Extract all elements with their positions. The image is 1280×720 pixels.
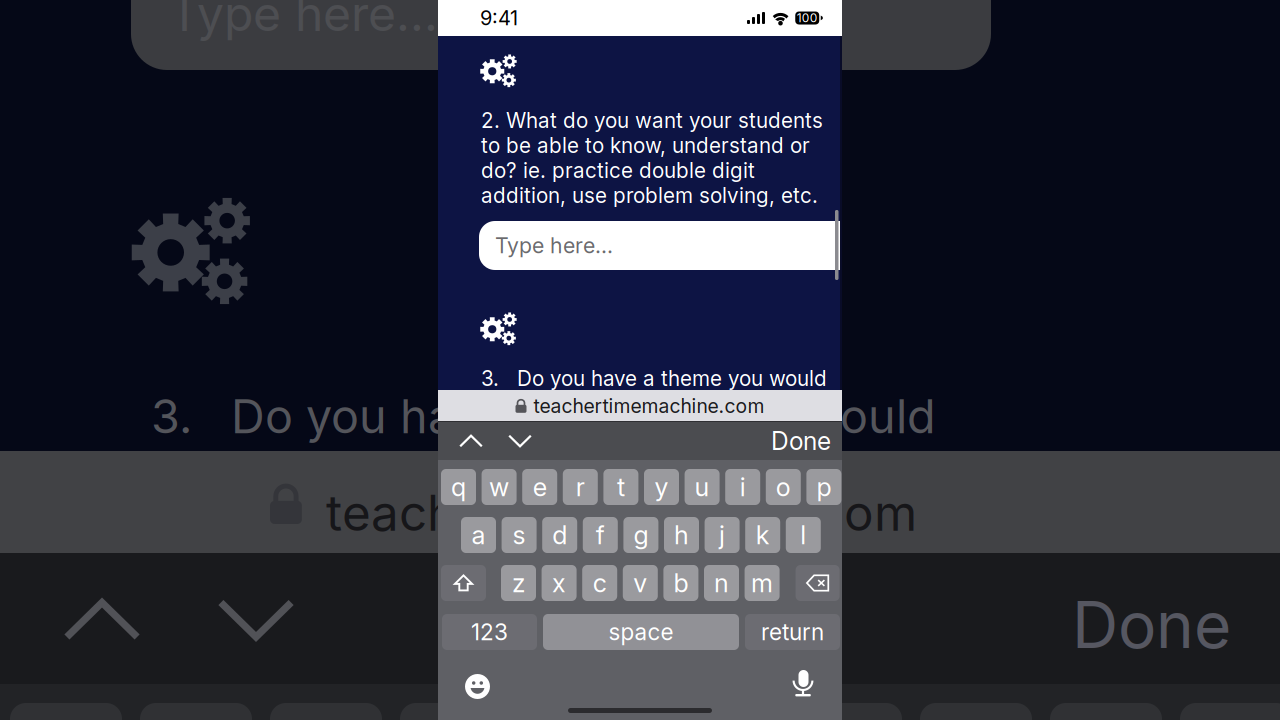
button[interactable]: f (583, 517, 618, 553)
button[interactable]: d (542, 517, 577, 553)
button[interactable]: u (685, 469, 720, 505)
button[interactable]: Delete (796, 565, 840, 601)
button[interactable]: t (603, 469, 638, 505)
staticText: space (608, 618, 673, 646)
button[interactable]: Emoji (463, 672, 492, 701)
button[interactable]: p (806, 469, 841, 505)
button[interactable]: q (441, 469, 476, 505)
button[interactable]: 123 (442, 614, 537, 650)
staticText: c (593, 568, 607, 598)
button[interactable]: return (745, 614, 840, 650)
staticText: teachertimemachine.com (533, 394, 764, 418)
staticText: e (533, 472, 547, 502)
staticText: y (654, 472, 668, 502)
button[interactable]: y (644, 469, 679, 505)
staticText: x (552, 568, 566, 598)
button[interactable]: i (725, 469, 760, 505)
staticText: m (751, 568, 773, 598)
button[interactable]: j (705, 517, 740, 553)
button[interactable]: Done (768, 422, 834, 460)
staticText: Done (771, 426, 831, 456)
staticText: teachertimemachine.com (326, 483, 917, 543)
staticText: u (695, 472, 710, 502)
staticText: 2. What do you want your students to be … (481, 108, 823, 208)
staticText: q (451, 472, 466, 502)
staticText: Type here... (495, 233, 613, 258)
staticText: b (673, 568, 688, 598)
button[interactable]: Dictation (792, 670, 814, 697)
button[interactable]: Shift (441, 565, 486, 601)
button[interactable]: r (563, 469, 598, 505)
button[interactable]: a (461, 517, 496, 553)
staticText: h (674, 520, 689, 550)
button[interactable]: s (502, 517, 537, 553)
staticText: 123 (471, 618, 508, 646)
staticText: t (617, 472, 625, 502)
staticText: l (800, 520, 806, 550)
staticText: i (740, 472, 746, 502)
staticText: 3. Do you have a theme you would (151, 388, 936, 444)
button[interactable]: b (663, 565, 698, 601)
staticText: v (633, 568, 647, 598)
button[interactable]: w (482, 469, 517, 505)
button[interactable]: h (664, 517, 699, 553)
staticText: g (633, 520, 648, 550)
staticText: p (816, 472, 831, 502)
staticText: d (552, 520, 567, 550)
button[interactable]: Next field (499, 422, 541, 460)
staticText: f (596, 520, 605, 550)
button[interactable]: space (543, 614, 739, 650)
button[interactable]: c (582, 565, 617, 601)
staticText: 3. Do you have a theme you would (481, 366, 827, 391)
button[interactable]: o (766, 469, 801, 505)
staticText: z (512, 568, 525, 598)
button[interactable]: e (522, 469, 557, 505)
staticText: o (776, 472, 791, 502)
staticText: w (489, 472, 509, 502)
staticText: k (756, 520, 770, 550)
button[interactable]: teachertimemachine.com (515, 390, 764, 422)
button[interactable]: x (542, 565, 577, 601)
staticText: r (576, 472, 585, 502)
staticText: j (719, 520, 725, 550)
staticText: 9:41 (480, 6, 518, 30)
button[interactable]: m (745, 565, 780, 601)
staticText: Type here... (169, 0, 438, 43)
staticText: a (471, 520, 485, 550)
staticText: s (513, 520, 526, 550)
button[interactable]: Previous field (450, 422, 492, 460)
staticText: Done (1072, 586, 1231, 663)
button[interactable]: l (786, 517, 821, 553)
button[interactable]: g (623, 517, 658, 553)
button[interactable]: n (704, 565, 739, 601)
staticText: n (714, 568, 729, 598)
button[interactable]: z (501, 565, 536, 601)
staticText: return (761, 618, 824, 646)
staticText: 100 (797, 11, 818, 25)
button[interactable]: k (745, 517, 780, 553)
button[interactable]: v (623, 565, 658, 601)
